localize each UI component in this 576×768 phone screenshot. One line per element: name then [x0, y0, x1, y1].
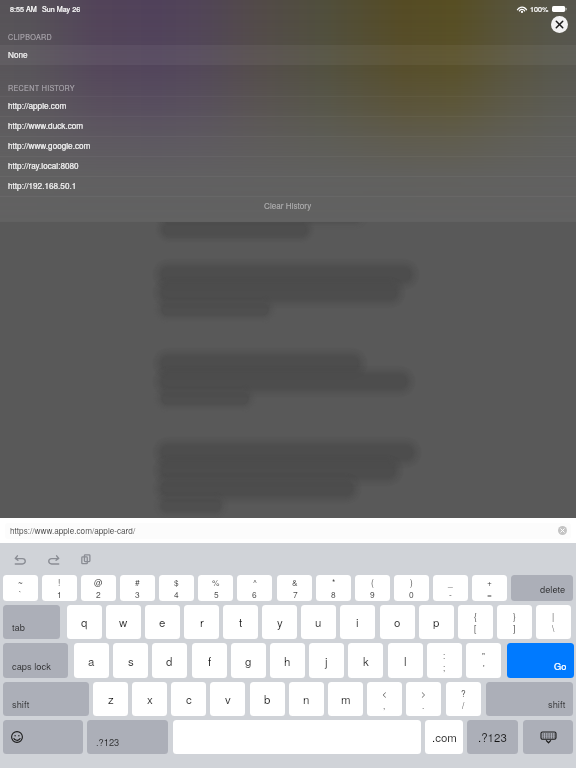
button[interactable]: "	[466, 643, 501, 678]
button[interactable]: j	[309, 643, 344, 678]
button[interactable]: f	[192, 643, 227, 678]
button[interactable]: #	[120, 575, 155, 601]
staticText: /	[462, 699, 465, 711]
button[interactable]: .?123	[467, 720, 518, 754]
button[interactable]: v	[210, 682, 245, 716]
button[interactable]: Undo	[14, 553, 27, 566]
button[interactable]: w	[106, 605, 141, 639]
button[interactable]: z	[93, 682, 128, 716]
staticText: http://www.duck.com	[8, 120, 84, 132]
staticText: >	[421, 687, 426, 699]
button[interactable]: x	[132, 682, 167, 716]
button[interactable]: h	[270, 643, 305, 678]
button[interactable]: :	[427, 643, 462, 678]
button[interactable]: http://www.duck.com	[0, 116, 576, 136]
button[interactable]: {	[458, 605, 493, 639]
button[interactable]: s	[113, 643, 148, 678]
button[interactable]: tab	[3, 605, 60, 639]
button[interactable]: Clear History	[0, 196, 576, 222]
button[interactable]: ~	[3, 575, 38, 601]
button[interactable]: &	[277, 575, 312, 601]
staticText: CLIPBOARD	[8, 32, 52, 42]
button[interactable]: delete	[511, 575, 573, 601]
button[interactable]: Close	[551, 16, 568, 33]
button[interactable]: )	[394, 575, 429, 601]
button[interactable]: http://ray.local:8080	[0, 156, 576, 176]
staticText: 100%	[530, 4, 549, 14]
button[interactable]: $	[159, 575, 194, 601]
staticText: "	[482, 649, 485, 661]
button[interactable]: u	[301, 605, 336, 639]
button[interactable]: r	[184, 605, 219, 639]
button[interactable]: https://www.apple.com/apple-card/	[5, 523, 571, 539]
button[interactable]: a	[74, 643, 109, 678]
button[interactable]: }	[497, 605, 532, 639]
button[interactable]: ?	[446, 682, 481, 716]
button[interactable]: g	[231, 643, 266, 678]
button[interactable]: @	[81, 575, 116, 601]
button[interactable]: n	[289, 682, 324, 716]
button[interactable]: shift	[486, 682, 573, 716]
staticText: 9	[370, 588, 375, 600]
staticText: m	[341, 691, 351, 707]
button[interactable]: +	[472, 575, 507, 601]
staticText: 7	[293, 588, 298, 600]
button[interactable]: .com	[425, 720, 463, 754]
staticText: =	[487, 588, 492, 600]
staticText: #	[135, 576, 140, 588]
button[interactable]: b	[250, 682, 285, 716]
button[interactable]: *	[316, 575, 351, 601]
button[interactable]: <	[367, 682, 402, 716]
button[interactable]: http://apple.com	[0, 96, 576, 116]
button[interactable]: caps lock	[3, 643, 68, 678]
staticText: tab	[12, 620, 25, 633]
staticText: shift	[12, 697, 30, 710]
button[interactable]: Go	[507, 643, 574, 678]
button[interactable]: http://www.google.com	[0, 136, 576, 156]
button[interactable]: m	[328, 682, 363, 716]
button[interactable]: c	[171, 682, 206, 716]
button[interactable]: Clear text	[558, 526, 567, 535]
button[interactable]: e	[145, 605, 180, 639]
button[interactable]: ^	[237, 575, 272, 601]
button[interactable]: Redo	[47, 553, 60, 566]
button[interactable]: k	[348, 643, 383, 678]
staticText: e	[159, 614, 166, 630]
button[interactable]: _	[433, 575, 468, 601]
button[interactable]: d	[152, 643, 187, 678]
button[interactable]: None	[0, 45, 576, 65]
staticText: ]	[513, 622, 516, 634]
button[interactable]: http://192.168.50.1	[0, 176, 576, 196]
button[interactable]: .?123	[87, 720, 168, 754]
staticText: h	[284, 653, 291, 669]
staticText: Go	[554, 659, 567, 672]
staticText: [	[474, 622, 477, 634]
button[interactable]: q	[67, 605, 102, 639]
button[interactable]: y	[262, 605, 297, 639]
button[interactable]: %	[198, 575, 233, 601]
button[interactable]: l	[388, 643, 423, 678]
button[interactable]: Emoji	[3, 720, 83, 754]
staticText: http://ray.local:8080	[8, 160, 79, 172]
staticText: }	[513, 610, 516, 622]
button[interactable]: |	[536, 605, 571, 639]
button[interactable]: (	[355, 575, 390, 601]
staticText: RECENT HISTORY	[8, 83, 75, 93]
button[interactable]: t	[223, 605, 258, 639]
button[interactable]: >	[406, 682, 441, 716]
button[interactable]: Paste	[80, 553, 93, 566]
staticText: )	[410, 576, 413, 588]
button[interactable]: p	[419, 605, 454, 639]
button[interactable]: Hide keyboard	[523, 720, 573, 754]
staticText: y	[277, 614, 283, 630]
staticText: q	[81, 614, 88, 630]
staticText: http://192.168.50.1	[8, 180, 77, 192]
button[interactable]: i	[340, 605, 375, 639]
button[interactable]: !	[42, 575, 77, 601]
staticText: g	[245, 653, 252, 669]
staticText: r	[200, 614, 204, 630]
staticText: !	[58, 576, 61, 588]
button[interactable]: shift	[3, 682, 89, 716]
button[interactable]: o	[380, 605, 415, 639]
